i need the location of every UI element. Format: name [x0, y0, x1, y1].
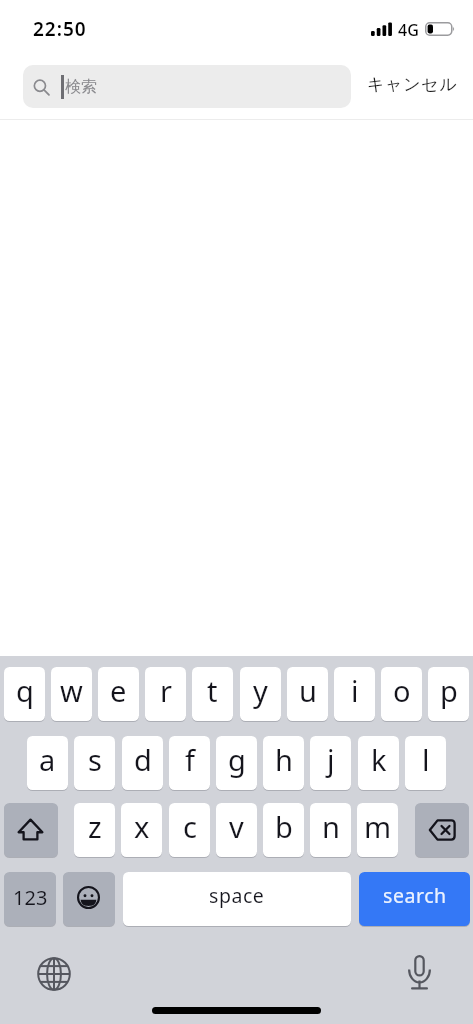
staticText: space: [209, 882, 265, 909]
staticText: 検索: [65, 77, 97, 97]
button[interactable]: v: [216, 803, 257, 858]
button[interactable]: Backspace: [415, 803, 469, 858]
staticText: u: [299, 671, 317, 710]
staticText: o: [393, 671, 411, 710]
staticText: c: [183, 807, 197, 846]
button[interactable]: r: [145, 667, 186, 722]
button[interactable]: x: [121, 803, 162, 858]
button[interactable]: p: [428, 667, 469, 722]
staticText: j: [327, 740, 335, 779]
staticText: t: [207, 671, 218, 710]
button[interactable]: Next keyboard: [35, 955, 73, 993]
button[interactable]: space: [123, 872, 351, 927]
button[interactable]: q: [4, 667, 45, 722]
button[interactable]: b: [263, 803, 304, 858]
button[interactable]: j: [310, 736, 351, 791]
staticText: 22:50: [33, 16, 87, 42]
staticText: z: [88, 807, 102, 846]
staticText: r: [160, 671, 172, 710]
staticText: s: [88, 740, 102, 779]
staticText: search: [383, 882, 447, 909]
button[interactable]: c: [169, 803, 210, 858]
staticText: f: [185, 740, 195, 779]
staticText: w: [60, 671, 83, 710]
button[interactable]: d: [122, 736, 163, 791]
button[interactable]: f: [169, 736, 210, 791]
button[interactable]: Shift: [4, 803, 58, 858]
staticText: y: [253, 671, 268, 710]
staticText: b: [275, 807, 293, 846]
staticText: m: [364, 807, 392, 846]
button[interactable]: t: [192, 667, 233, 722]
staticText: n: [322, 807, 340, 846]
button[interactable]: y: [240, 667, 281, 722]
staticText: d: [134, 740, 152, 779]
staticText: v: [229, 807, 244, 846]
button[interactable]: m: [357, 803, 398, 858]
staticText: 123: [13, 884, 48, 911]
button[interactable]: 123: [4, 872, 56, 927]
button[interactable]: a: [27, 736, 68, 791]
button[interactable]: 検索: [23, 65, 351, 108]
staticText: 4G: [398, 19, 419, 41]
button[interactable]: l: [405, 736, 446, 791]
button[interactable]: s: [74, 736, 115, 791]
staticText: k: [371, 740, 387, 779]
button[interactable]: search: [359, 872, 470, 927]
staticText: l: [422, 740, 430, 779]
button[interactable]: h: [263, 736, 304, 791]
button[interactable]: キャンセル: [367, 74, 458, 95]
staticText: a: [39, 740, 56, 779]
staticText: g: [228, 740, 246, 779]
button[interactable]: k: [358, 736, 399, 791]
staticText: q: [16, 671, 34, 710]
staticText: p: [440, 671, 458, 710]
button[interactable]: u: [287, 667, 328, 722]
button[interactable]: Dictation: [400, 947, 438, 997]
staticText: i: [351, 671, 359, 710]
staticText: x: [134, 807, 150, 846]
button[interactable]: w: [51, 667, 92, 722]
button[interactable]: Emoji: [63, 872, 115, 927]
button[interactable]: n: [310, 803, 351, 858]
button[interactable]: o: [381, 667, 422, 722]
staticText: e: [110, 671, 127, 710]
staticText: h: [275, 740, 293, 779]
button[interactable]: i: [334, 667, 375, 722]
button[interactable]: g: [216, 736, 257, 791]
button[interactable]: e: [98, 667, 139, 722]
button[interactable]: z: [74, 803, 115, 858]
